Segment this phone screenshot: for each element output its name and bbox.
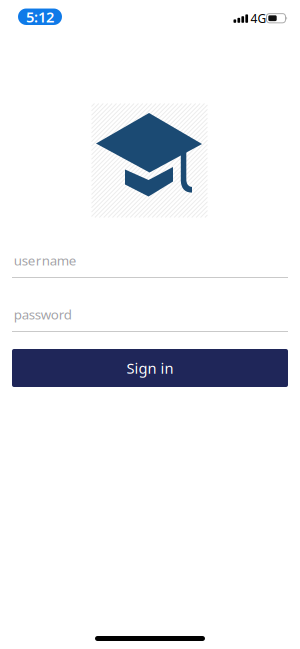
- staticText: username: [14, 251, 77, 269]
- staticText: 4G: [250, 10, 266, 26]
- staticText: password: [14, 305, 72, 323]
- staticText: Sign in: [126, 358, 173, 378]
- button[interactable]: Sign in: [12, 349, 288, 387]
- staticText: 5:12: [26, 7, 54, 26]
- button[interactable]: password: [12, 308, 288, 332]
- button[interactable]: username: [12, 254, 288, 278]
